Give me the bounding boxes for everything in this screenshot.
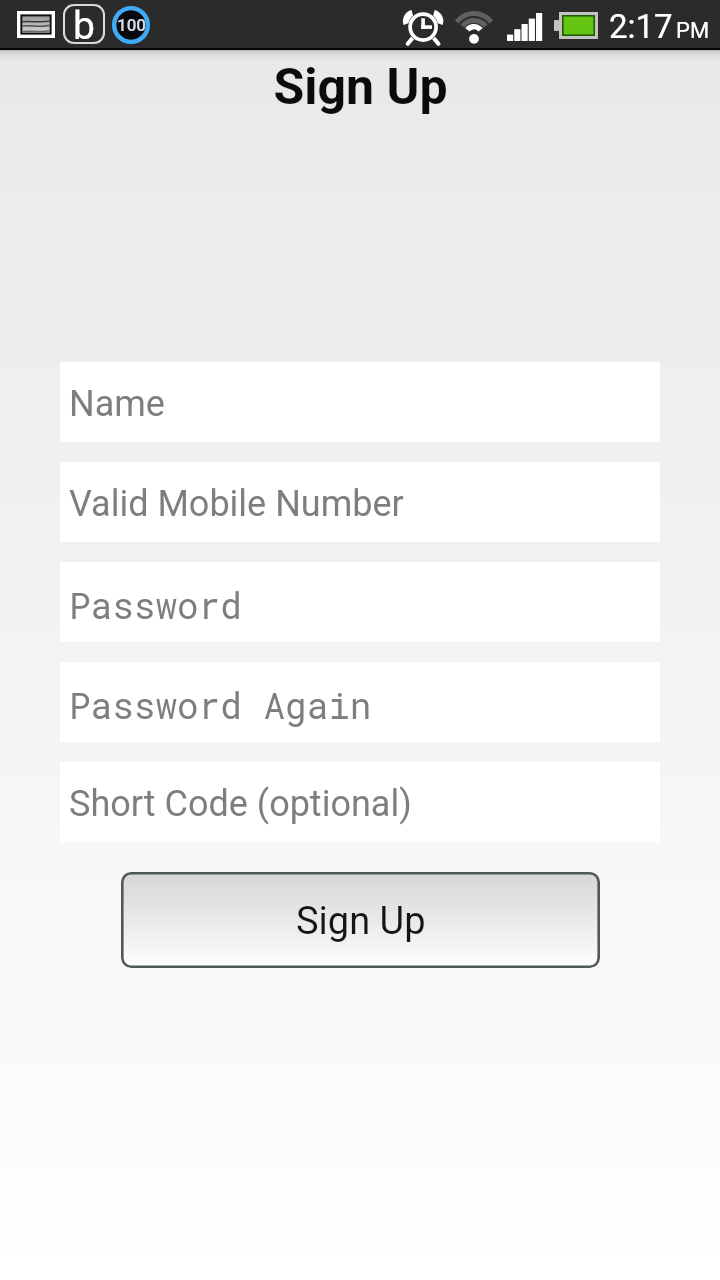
staticText: 2:17 <box>609 7 673 46</box>
button[interactable]: Short Code (optional) <box>60 762 660 842</box>
staticText: Short Code (optional) <box>69 783 412 825</box>
staticText: Password Again <box>69 681 372 728</box>
staticText: Valid Mobile Number <box>69 483 404 525</box>
staticText: Name <box>69 383 165 425</box>
staticText: Password <box>69 581 242 628</box>
button[interactable]: Name <box>60 362 660 442</box>
button[interactable]: Password Again <box>60 662 660 742</box>
staticText: Sign Up <box>273 58 448 117</box>
button[interactable]: Sign Up <box>121 872 600 968</box>
staticText: PM <box>676 18 710 44</box>
button[interactable]: Valid Mobile Number <box>60 462 660 542</box>
staticText: Sign Up <box>296 899 426 944</box>
button[interactable]: Password <box>60 562 660 642</box>
staticText: 100 <box>117 15 146 35</box>
staticText: b <box>73 3 95 43</box>
